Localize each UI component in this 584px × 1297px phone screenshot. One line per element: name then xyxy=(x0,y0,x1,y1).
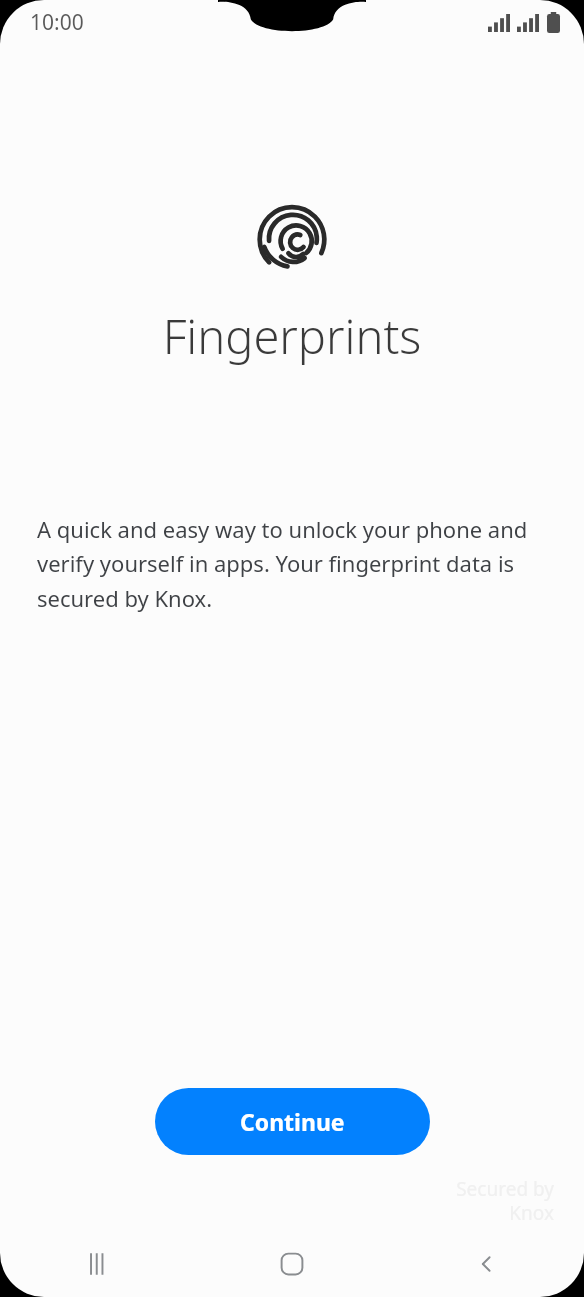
button[interactable]: Recent apps xyxy=(0,1231,194,1297)
staticText: A quick and easy way to unlock your phon… xyxy=(37,514,550,614)
button[interactable]: Continue xyxy=(155,1088,430,1155)
staticText: Fingerprints xyxy=(0,304,584,368)
staticText: Continue xyxy=(240,1106,345,1137)
button[interactable]: Back xyxy=(389,1231,584,1297)
button[interactable]: Home xyxy=(194,1231,389,1297)
staticText: 10:00 xyxy=(30,8,84,37)
other: Fingerprint xyxy=(254,200,330,276)
